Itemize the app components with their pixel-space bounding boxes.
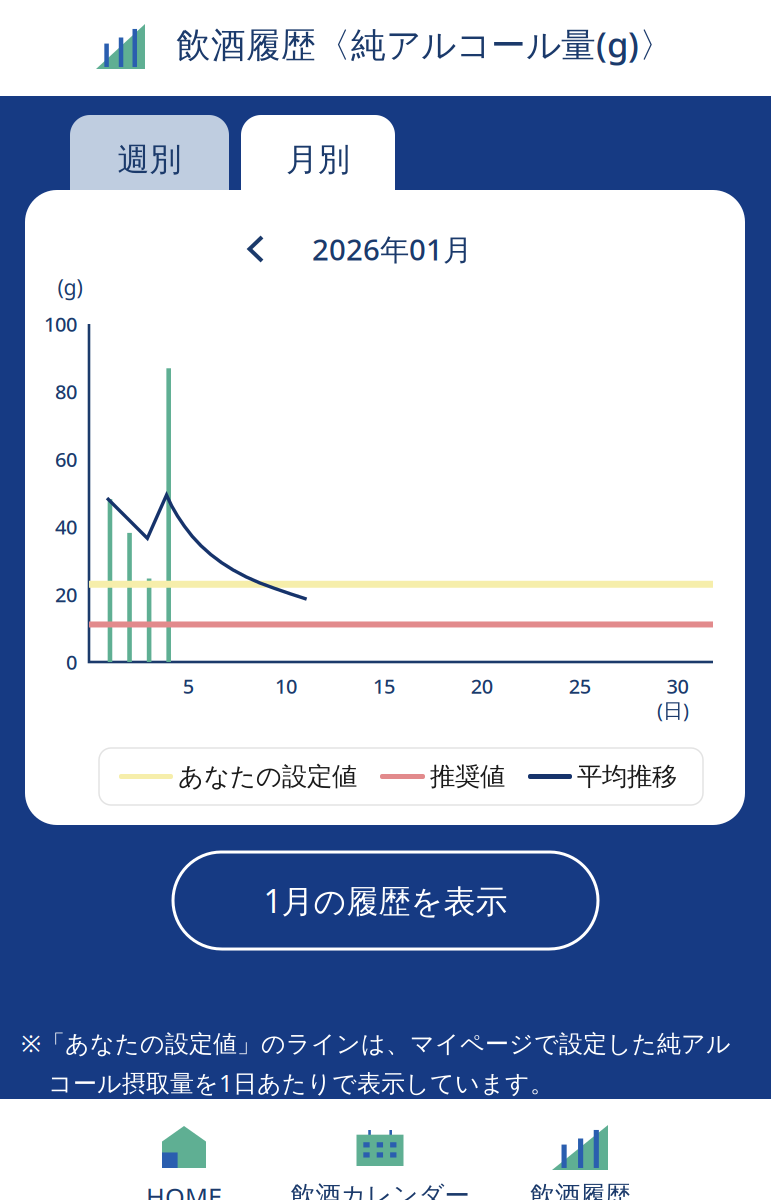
staticText: 25 — [569, 673, 591, 699]
staticText: 平均推移 — [577, 761, 677, 792]
button[interactable]: 月別 — [241, 115, 395, 225]
staticText: 20 — [55, 581, 77, 608]
staticText: 1月の履歴を表示 — [263, 879, 507, 922]
staticText: 40 — [55, 513, 77, 540]
staticText: 20 — [471, 673, 493, 699]
button[interactable]: HOME — [89, 1099, 279, 1200]
button[interactable]: 飲酒履歴 — [485, 1099, 675, 1200]
staticText: 10 — [275, 673, 297, 699]
staticText: (日) — [657, 697, 689, 723]
staticText: (g) — [57, 273, 82, 301]
staticText: 月別 — [286, 140, 350, 179]
staticText: 100 — [44, 311, 77, 337]
button[interactable]: 飲酒カレンダー — [285, 1099, 475, 1200]
button[interactable]: 1月の履歴を表示 — [173, 852, 598, 949]
staticText: 80 — [55, 378, 77, 405]
staticText: 飲酒履歴 — [530, 1180, 630, 1200]
staticText: 2026年01月 — [312, 229, 472, 268]
staticText: 5 — [183, 673, 194, 699]
staticText: あなたの設定値 — [178, 761, 357, 792]
staticText: 15 — [373, 673, 395, 699]
staticText: 飲酒カレンダー — [290, 1180, 469, 1200]
staticText: 30 — [666, 673, 688, 699]
staticText: コール摂取量を1日あたりで表示しています。 — [48, 1067, 554, 1099]
button[interactable]: Previous month — [246, 235, 266, 263]
staticText: 飲酒履歴〈純アルコール量(g)〉 — [176, 21, 674, 67]
staticText: 60 — [55, 446, 77, 472]
staticText: 週別 — [117, 140, 181, 179]
staticText: ※「あなたの設定値」のラインは、マイページで設定した純アル — [21, 1027, 731, 1059]
staticText: HOME — [146, 1180, 222, 1200]
staticText: 0 — [66, 649, 77, 675]
button[interactable]: 週別 — [70, 115, 229, 225]
staticText: 推奨値 — [430, 761, 505, 792]
